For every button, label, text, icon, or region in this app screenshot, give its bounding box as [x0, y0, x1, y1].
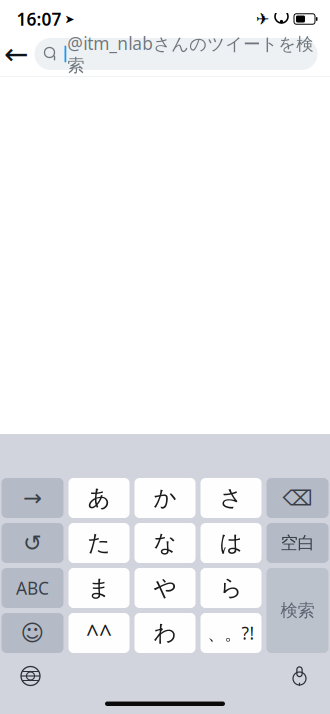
button[interactable]: 検索: [266, 568, 328, 653]
button[interactable]: 、。?!: [200, 613, 261, 653]
staticText: ☺: [20, 620, 44, 646]
button[interactable]: Next candidate: [1, 478, 63, 518]
staticText: ✈: [256, 10, 269, 28]
staticText: や: [153, 574, 176, 602]
button[interactable]: ^^: [68, 613, 129, 653]
button[interactable]: あ: [68, 478, 129, 518]
button[interactable]: Back: [0, 34, 34, 74]
button[interactable]: Delete: [266, 478, 328, 518]
button[interactable]: た: [68, 523, 129, 563]
button[interactable]: ABC keyboard: [1, 568, 63, 608]
button[interactable]: Dictation: [277, 659, 321, 693]
staticText: @itm_nlabさんのツイートを検索: [67, 32, 313, 76]
staticText: ➤: [64, 12, 74, 26]
button[interactable]: わ: [134, 613, 195, 653]
button[interactable]: か: [134, 478, 195, 518]
staticText: は: [219, 529, 242, 557]
button[interactable]: Undo: [1, 523, 63, 563]
button[interactable]: さ: [200, 478, 261, 518]
staticText: 検索: [280, 600, 314, 621]
staticText: さ: [219, 484, 242, 512]
button[interactable]: ら: [200, 568, 261, 608]
staticText: ^^: [86, 618, 112, 648]
button[interactable]: ま: [68, 568, 129, 608]
button[interactable]: は: [200, 523, 261, 563]
button[interactable]: Space: [266, 523, 328, 563]
staticText: 16:07: [16, 7, 61, 30]
button[interactable]: Emoji: [1, 613, 63, 653]
staticText: た: [87, 529, 110, 557]
button[interactable]: や: [134, 568, 195, 608]
staticText: ↺: [23, 530, 42, 556]
staticText: ⌫: [282, 486, 312, 510]
button[interactable]: な: [134, 523, 195, 563]
staticText: ま: [87, 574, 110, 602]
staticText: あ: [87, 484, 110, 512]
staticText: 空白: [280, 532, 314, 554]
staticText: ら: [219, 574, 242, 602]
staticText: →: [23, 485, 42, 511]
staticText: な: [153, 529, 176, 557]
staticText: ABC: [16, 576, 49, 599]
staticText: 、。?!: [207, 621, 254, 644]
staticText: わ: [153, 619, 176, 647]
button[interactable]: @itm_nlabさんのツイートを検索: [34, 38, 317, 70]
staticText: か: [153, 484, 176, 512]
button[interactable]: Next keyboard: [8, 659, 52, 693]
staticText: ←: [4, 37, 29, 71]
